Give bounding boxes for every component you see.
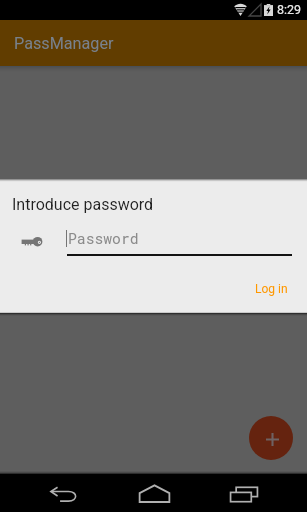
button[interactable]: Back [40, 478, 88, 510]
staticText: 8:29 [277, 2, 302, 17]
button[interactable]: Home [130, 477, 178, 509]
staticText: Password [68, 229, 139, 248]
button[interactable]: Recents [220, 478, 268, 510]
button[interactable]: Log in [245, 277, 298, 301]
staticText: Log in [255, 282, 288, 296]
button[interactable]: Add [249, 416, 293, 460]
staticText: Introduce password [12, 195, 154, 214]
staticText: PassManager [14, 34, 114, 53]
